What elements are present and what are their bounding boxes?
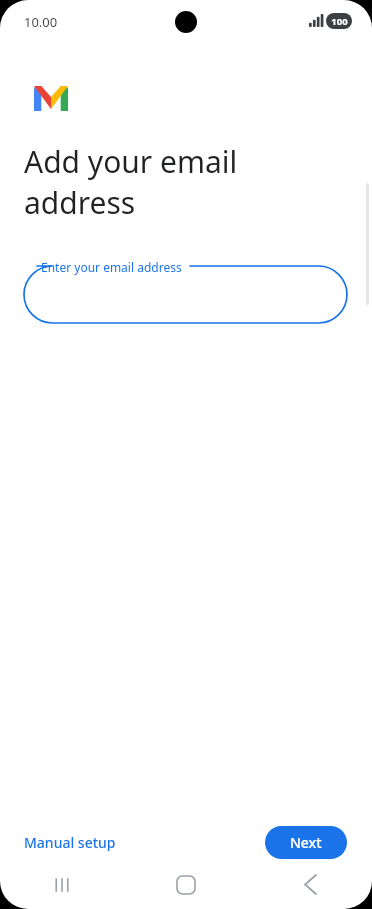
- button[interactable]: Recent apps: [0, 860, 124, 909]
- staticText: Add your email address: [24, 141, 238, 223]
- staticText: Next: [290, 833, 322, 852]
- staticText: 10.00: [24, 13, 58, 31]
- button[interactable]: Home: [124, 860, 248, 909]
- staticText: 100: [331, 15, 348, 28]
- button[interactable]: Back: [248, 860, 372, 909]
- staticText: Manual setup: [24, 833, 116, 852]
- button[interactable]: Enter your email address: [24, 256, 347, 323]
- button[interactable]: Manual setup: [24, 825, 116, 860]
- button[interactable]: Next: [265, 826, 347, 859]
- staticText: Enter your email address: [41, 259, 182, 275]
